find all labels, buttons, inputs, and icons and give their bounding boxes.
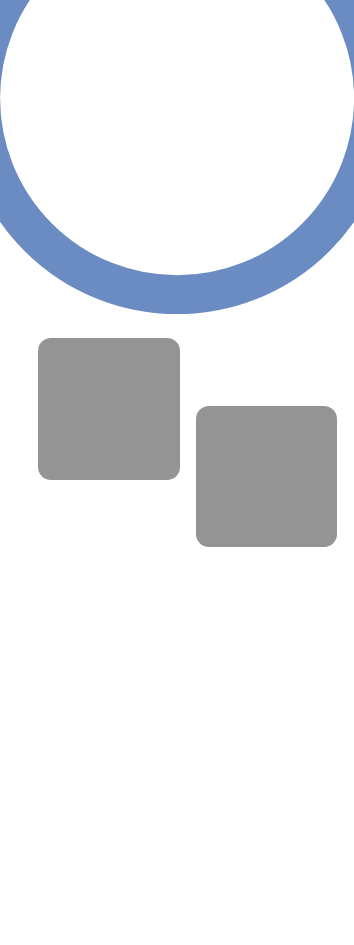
button[interactable]: Second tile xyxy=(196,406,337,547)
button[interactable]: First tile xyxy=(38,338,180,480)
